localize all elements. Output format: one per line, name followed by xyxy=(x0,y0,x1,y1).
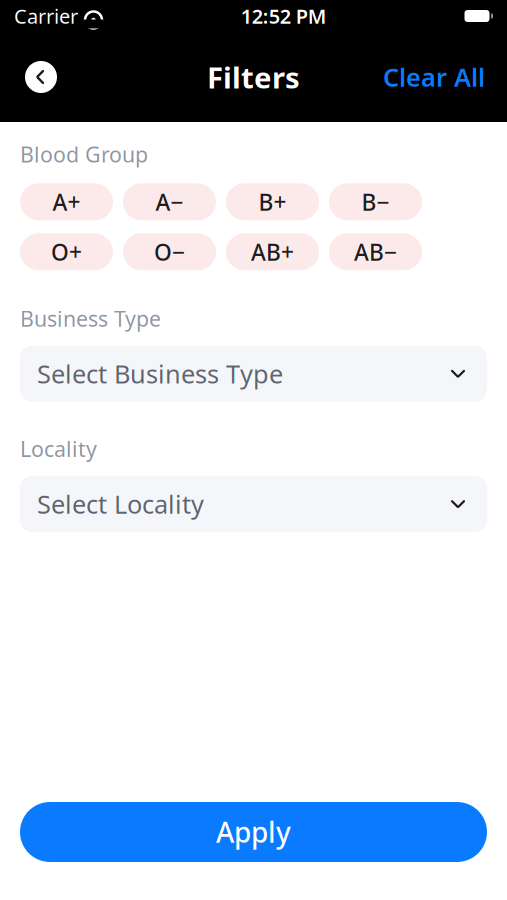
staticText: Business Type xyxy=(20,304,161,333)
button[interactable]: Select Locality xyxy=(20,476,487,532)
staticText: AB+ xyxy=(251,237,294,267)
button[interactable]: A+ xyxy=(20,183,113,220)
staticText: O+ xyxy=(51,237,82,267)
button[interactable]: O− xyxy=(123,233,216,270)
staticText: B+ xyxy=(258,187,286,217)
button[interactable]: Back xyxy=(19,55,63,99)
button[interactable]: B+ xyxy=(226,183,319,220)
button[interactable]: O+ xyxy=(20,233,113,270)
staticText: Select Locality xyxy=(37,487,204,521)
button[interactable]: B− xyxy=(329,183,422,220)
staticText: Blood Group xyxy=(20,140,148,168)
staticText: Locality xyxy=(20,435,97,463)
staticText: B− xyxy=(361,187,389,217)
staticText: AB− xyxy=(354,237,397,267)
button[interactable]: Apply xyxy=(20,802,487,862)
staticText: O− xyxy=(154,237,185,267)
button[interactable]: A− xyxy=(123,183,216,220)
button[interactable]: AB+ xyxy=(226,233,319,270)
button[interactable]: Select Business Type xyxy=(20,346,487,402)
staticText: Filters xyxy=(207,57,300,96)
staticText: Clear All xyxy=(383,60,485,94)
staticText: Select Business Type xyxy=(37,357,283,390)
staticText: Carrier xyxy=(14,3,78,29)
button[interactable]: AB− xyxy=(329,233,422,270)
button[interactable]: Clear All xyxy=(379,50,489,104)
staticText: Apply xyxy=(216,813,291,851)
staticText: 12:52 PM xyxy=(241,3,327,29)
staticText: A− xyxy=(155,187,183,217)
staticText: A+ xyxy=(52,187,80,217)
